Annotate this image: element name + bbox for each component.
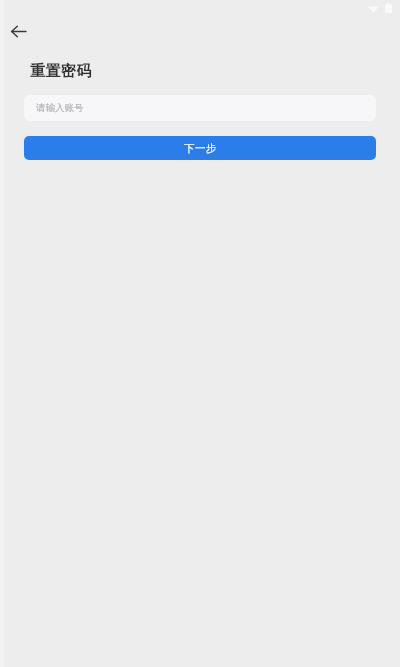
button[interactable]: 请输入账号 xyxy=(24,95,376,121)
button[interactable]: Back xyxy=(5,18,31,44)
staticText: 下一步 xyxy=(184,142,217,155)
staticText: 请输入账号 xyxy=(36,102,84,114)
button[interactable]: 下一步 xyxy=(24,136,376,160)
staticText: 重置密码 xyxy=(30,62,92,81)
